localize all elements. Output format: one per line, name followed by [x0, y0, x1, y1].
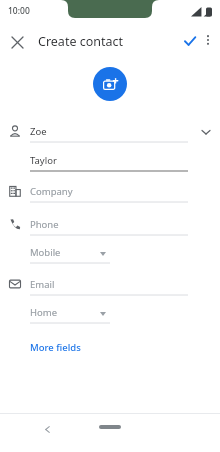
- button[interactable]: More options: [197, 29, 219, 51]
- button[interactable]: Home: [99, 425, 121, 429]
- button[interactable]: More fields: [26, 338, 85, 357]
- button[interactable]: Phone: [30, 217, 188, 236]
- staticText: Email: [30, 278, 55, 291]
- staticText: Phone: [30, 218, 59, 231]
- staticText: More fields: [30, 341, 81, 354]
- staticText: Create contact: [38, 33, 124, 50]
- button[interactable]: Save: [178, 29, 202, 53]
- button[interactable]: Mobile: [30, 245, 110, 264]
- button[interactable]: Taylor: [30, 153, 188, 172]
- staticText: Taylor: [30, 154, 57, 167]
- button[interactable]: Close: [4, 29, 30, 55]
- button[interactable]: Email: [30, 277, 188, 296]
- staticText: Company: [30, 185, 73, 198]
- button[interactable]: Expand name fields: [196, 122, 216, 142]
- staticText: Mobile: [30, 246, 61, 259]
- button[interactable]: Company: [30, 184, 188, 203]
- staticText: Zoe: [30, 125, 47, 138]
- staticText: 10:00: [8, 5, 30, 17]
- button[interactable]: Home: [30, 305, 110, 324]
- button[interactable]: Add photo: [93, 67, 127, 101]
- button[interactable]: Zoe: [30, 124, 188, 143]
- staticText: Home: [30, 306, 58, 319]
- button[interactable]: Back: [38, 420, 56, 438]
